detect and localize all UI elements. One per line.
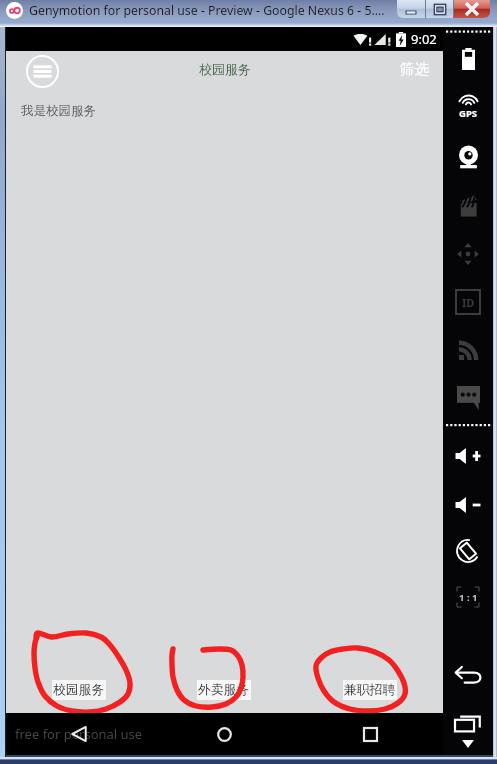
button[interactable]: Back (443, 658, 493, 692)
button[interactable]: Volume down (443, 488, 493, 522)
button[interactable]: Minimize (397, 0, 425, 18)
button[interactable]: Rotate (443, 534, 493, 568)
staticText: 校园服务 (53, 682, 105, 698)
button[interactable]: Home (151, 713, 297, 755)
staticText: 1 : 1 (459, 591, 478, 604)
button[interactable]: Scale 1:1 (443, 580, 493, 614)
button[interactable]: Messages (443, 381, 493, 415)
button[interactable]: Back (6, 713, 151, 755)
button[interactable]: 外卖服务 (197, 680, 251, 700)
button[interactable]: Camera (443, 140, 493, 174)
button[interactable]: Network (443, 333, 493, 367)
button[interactable]: 筛选 (392, 55, 436, 83)
button[interactable]: GPS (443, 91, 493, 125)
button[interactable]: More (460, 736, 476, 752)
button[interactable]: Menu (20, 49, 64, 93)
button[interactable]: 校园服务 (52, 680, 106, 700)
staticText: 9:02 (411, 30, 437, 48)
staticText: 兼职招聘 (344, 682, 396, 698)
button[interactable]: Battery (443, 42, 493, 76)
staticText: Genymotion for personal use - Preview - … (29, 2, 385, 19)
staticText: free for personal use (15, 725, 143, 743)
staticText: 筛选 (400, 60, 429, 78)
button[interactable]: Recents (443, 706, 493, 740)
button[interactable]: Record video (443, 189, 493, 223)
button[interactable]: D-pad (443, 237, 493, 271)
staticText: GPS (459, 107, 478, 120)
staticText: 外卖服务 (198, 682, 250, 698)
button[interactable]: Close (454, 0, 490, 18)
button[interactable]: Identifiers (443, 285, 493, 319)
button[interactable]: Recents (297, 713, 443, 755)
button[interactable]: Maximize (426, 0, 453, 18)
staticText: ID (462, 295, 475, 310)
button[interactable]: 兼职招聘 (343, 680, 397, 700)
staticText: 校园服务 (199, 61, 251, 77)
staticText: 我是校园服务 (21, 103, 96, 119)
button[interactable]: Volume up (443, 439, 493, 473)
